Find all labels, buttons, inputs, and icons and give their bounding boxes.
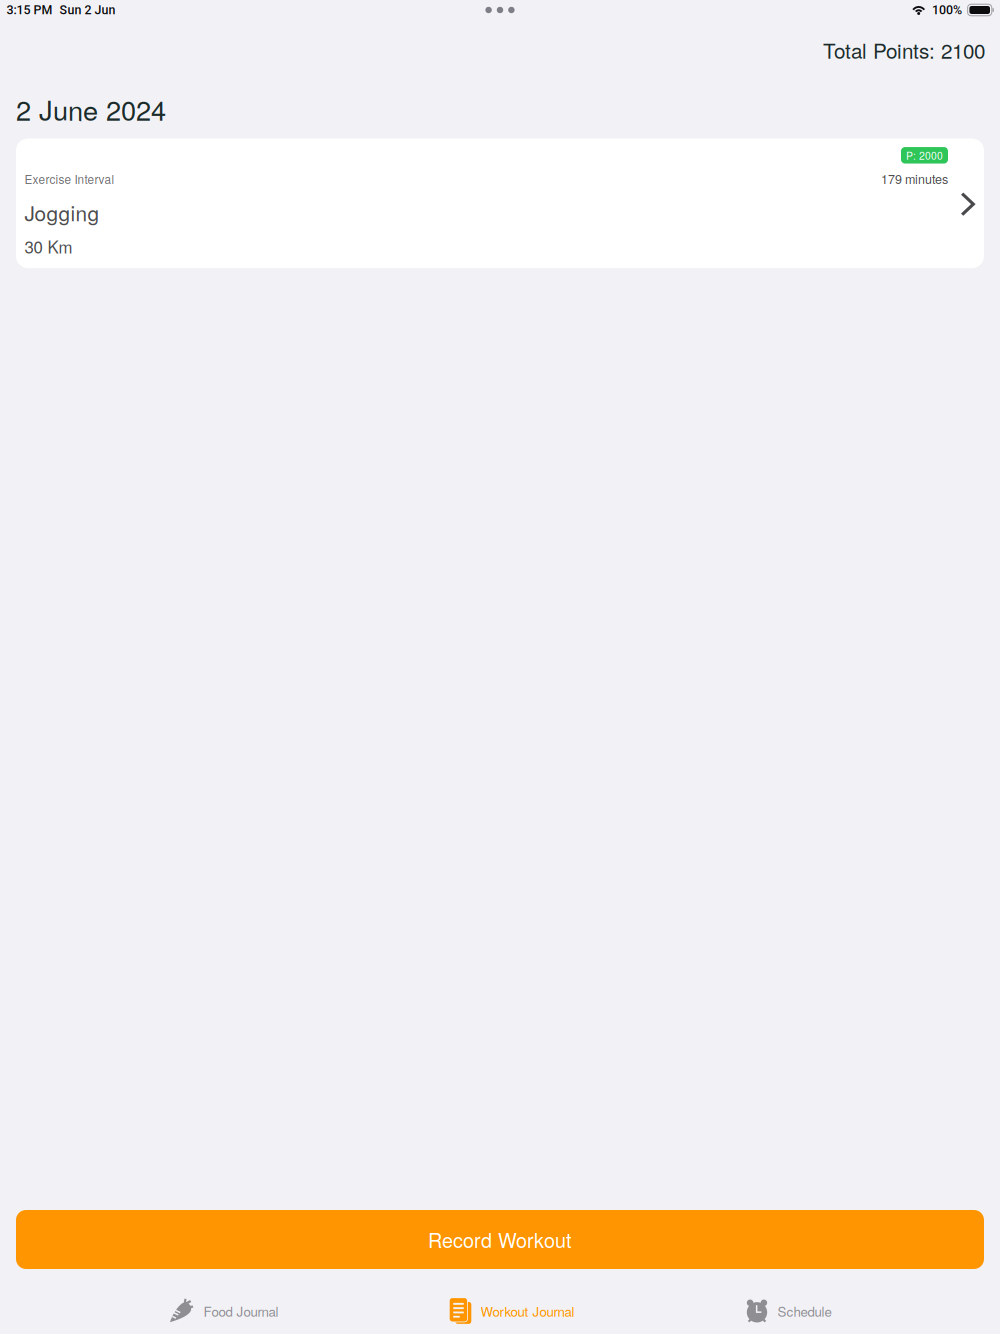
button[interactable]: Schedule bbox=[745, 1291, 831, 1331]
staticText: 30 Km bbox=[24, 234, 72, 258]
staticText: 2 June 2024 bbox=[16, 90, 166, 129]
button[interactable]: Workout Journal bbox=[449, 1291, 574, 1331]
staticText: Schedule bbox=[777, 1301, 831, 1321]
staticText: 100% bbox=[932, 3, 962, 17]
button[interactable]: Food Journal bbox=[168, 1291, 278, 1331]
staticText: Workout Journal bbox=[480, 1301, 574, 1321]
staticText: Sun 2 Jun bbox=[59, 3, 115, 17]
staticText: Exercise Interval bbox=[24, 170, 114, 187]
staticText: Record Workout bbox=[428, 1225, 572, 1254]
staticText: Total Points: 2100 bbox=[823, 35, 985, 65]
staticText: Jogging bbox=[24, 197, 99, 227]
staticText: 3:15 PM bbox=[6, 3, 52, 17]
staticText: P: 2000 bbox=[906, 148, 943, 163]
button[interactable]: Record Workout bbox=[16, 1210, 984, 1269]
staticText: 179 minutes bbox=[881, 169, 948, 187]
staticText: Food Journal bbox=[203, 1301, 278, 1321]
button[interactable]: Jogging, 30 Km, 179 minutes, 2000 points bbox=[16, 138, 984, 268]
